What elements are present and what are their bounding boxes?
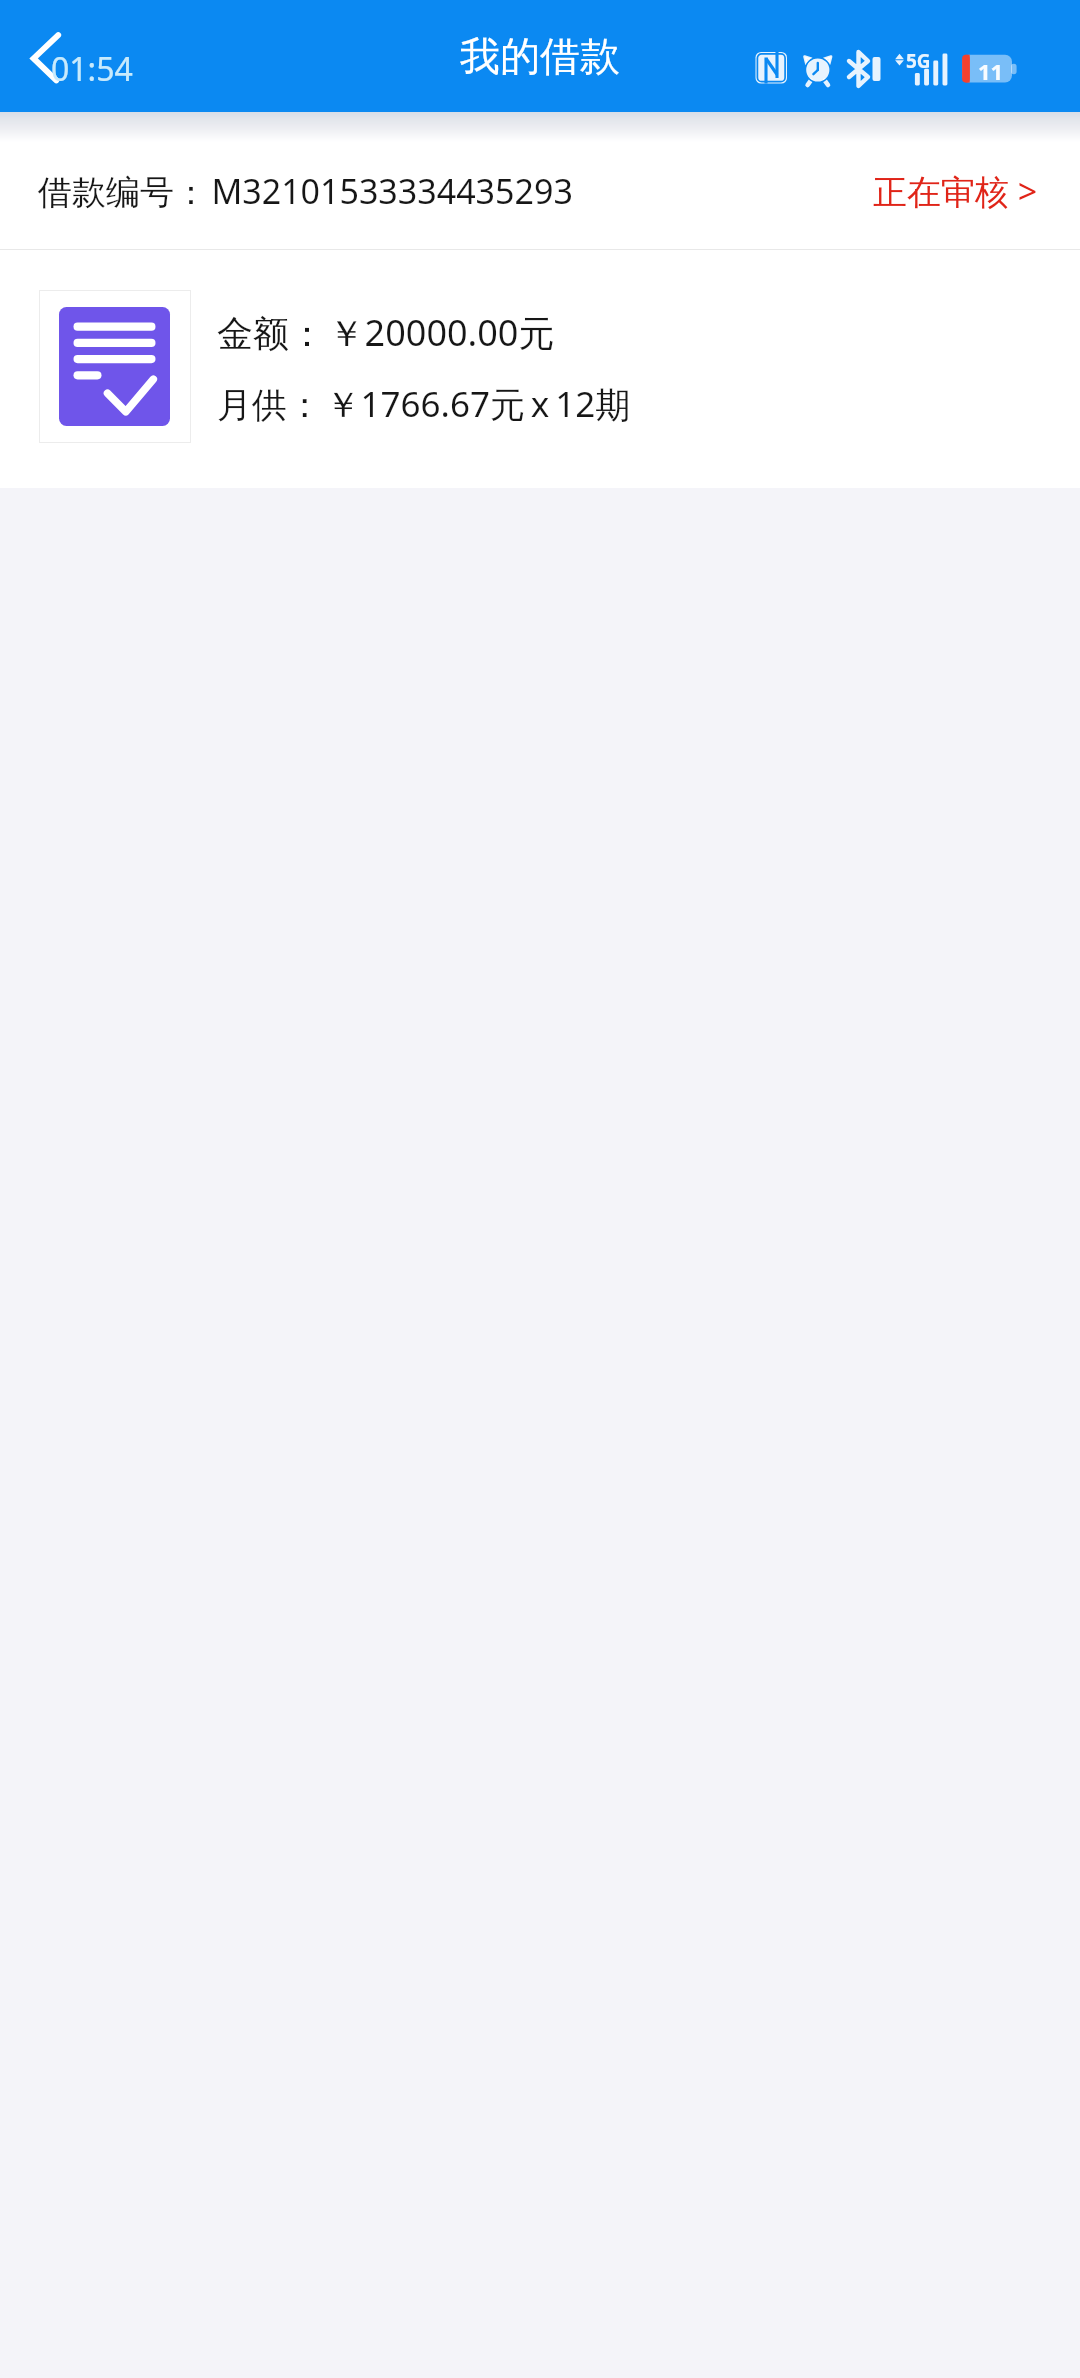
staticText: 5G bbox=[906, 48, 931, 74]
staticText: 正在审核 > bbox=[873, 168, 1038, 214]
staticText: 借款编号： M32101533334435293 bbox=[38, 168, 573, 214]
button[interactable]: 金额： ￥20000.00元 bbox=[0, 250, 1080, 488]
staticText: 01:54 bbox=[51, 47, 133, 91]
button[interactable]: 借款编号： M32101533334435293 bbox=[0, 112, 1080, 250]
button[interactable]: Back bbox=[10, 14, 76, 80]
staticText: 月供： ￥1766.67元 x 12期 bbox=[217, 380, 631, 428]
staticText: 金额： ￥20000.00元 bbox=[217, 308, 555, 357]
staticText: 我的借款 bbox=[0, 31, 1080, 81]
staticText: 11 bbox=[978, 56, 1004, 86]
button[interactable]: 正在审核 > bbox=[855, 112, 1060, 250]
